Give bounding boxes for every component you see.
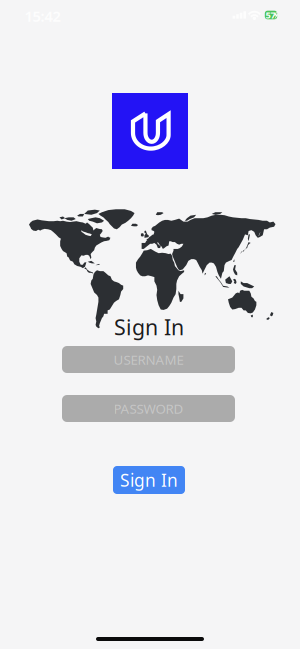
staticText: 57: [265, 9, 275, 21]
button[interactable]: Sign In: [113, 466, 185, 494]
staticText: Sign In: [120, 468, 178, 491]
staticText: Sign In: [114, 313, 184, 341]
button[interactable]: USERNAME: [62, 346, 235, 373]
button[interactable]: PASSWORD: [62, 395, 235, 422]
staticText: USERNAME: [113, 351, 183, 368]
staticText: PASSWORD: [113, 400, 183, 417]
